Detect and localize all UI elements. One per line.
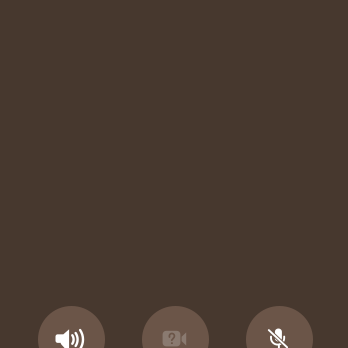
- button[interactable]: Speaker: [39, 306, 106, 348]
- button[interactable]: Camera: [142, 306, 209, 348]
- button[interactable]: Mute: [245, 306, 312, 348]
